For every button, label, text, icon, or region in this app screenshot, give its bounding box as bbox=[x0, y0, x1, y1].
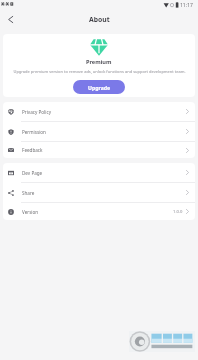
staticText: Premium bbox=[86, 58, 112, 66]
button[interactable]: Version bbox=[3, 203, 195, 220]
staticText: Upgrade premium version to remove ads, u… bbox=[13, 69, 186, 74]
staticText: Version bbox=[22, 209, 39, 215]
button[interactable]: Share bbox=[3, 183, 195, 202]
button[interactable]: Dev Page bbox=[3, 163, 195, 182]
staticText: Privacy Policy bbox=[22, 109, 51, 115]
staticText: Share bbox=[22, 190, 35, 196]
staticText: Upgrade bbox=[88, 84, 111, 91]
staticText: About bbox=[89, 15, 110, 24]
button[interactable]: Upgrade bbox=[73, 80, 125, 94]
button[interactable]: Privacy Policy bbox=[3, 102, 195, 121]
staticText: Dev Page bbox=[22, 170, 43, 176]
button[interactable]: Feedback bbox=[3, 142, 195, 158]
button[interactable]: Back bbox=[1, 10, 19, 28]
staticText: Permission bbox=[22, 129, 46, 135]
staticText: 1.0.0 bbox=[173, 209, 183, 215]
button[interactable]: Permission bbox=[3, 122, 195, 141]
staticText: 11:17 bbox=[180, 2, 193, 9]
staticText: Feedback bbox=[22, 147, 43, 153]
